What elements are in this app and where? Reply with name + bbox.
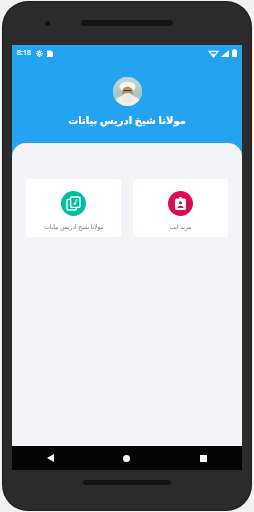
- button[interactable]: مولانا شيخ ادريس بيانات: [26, 179, 121, 237]
- button[interactable]: Recent apps: [165, 446, 242, 470]
- button[interactable]: Profile photo: [113, 77, 142, 106]
- staticText: مولانا شيخ ادريس بيانات: [68, 113, 186, 127]
- button[interactable]: Home: [88, 446, 165, 470]
- button[interactable]: Back: [12, 446, 88, 470]
- staticText: 8:18: [17, 48, 31, 58]
- button[interactable]: مزيد ايب: [133, 179, 228, 237]
- staticText: مزيد ايب: [169, 223, 192, 231]
- staticText: مولانا شيخ ادريس بيانات: [44, 223, 104, 231]
